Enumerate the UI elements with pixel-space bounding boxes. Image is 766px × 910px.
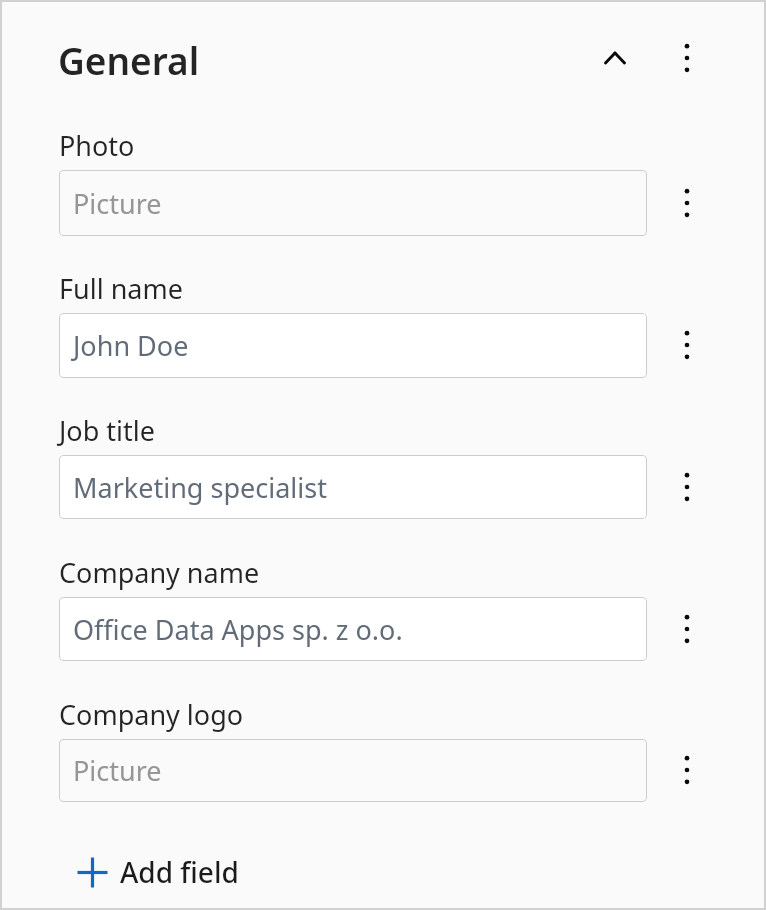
button[interactable]: Office Data Apps sp. z o.o. (59, 597, 647, 661)
staticText: Company logo (59, 696, 244, 733)
button[interactable]: More options for Photo (665, 181, 709, 225)
button[interactable]: More options for Job title (665, 465, 709, 509)
button[interactable]: More options for Company logo (665, 748, 709, 792)
staticText: Picture (73, 185, 162, 222)
button[interactable]: More options for Company name (665, 607, 709, 651)
staticText: Full name (59, 270, 183, 307)
staticText: Office Data Apps sp. z o.o. (73, 611, 403, 648)
staticText: Marketing specialist (73, 469, 327, 506)
button[interactable]: John Doe (59, 313, 647, 378)
staticText: Picture (73, 752, 162, 789)
button[interactable]: Picture (59, 170, 647, 236)
staticText: John Doe (73, 327, 189, 364)
button[interactable]: More options for Full name (665, 323, 709, 367)
button[interactable]: Section options (665, 36, 709, 80)
button[interactable]: Marketing specialist (59, 455, 647, 519)
staticText: Job title (59, 412, 155, 449)
staticText: General (58, 35, 200, 85)
button[interactable]: Add field (64, 846, 255, 898)
staticText: Photo (59, 127, 135, 164)
button[interactable]: Collapse section (591, 34, 639, 82)
staticText: Add field (120, 853, 239, 891)
button[interactable]: Picture (59, 739, 647, 802)
staticText: Company name (59, 554, 260, 591)
